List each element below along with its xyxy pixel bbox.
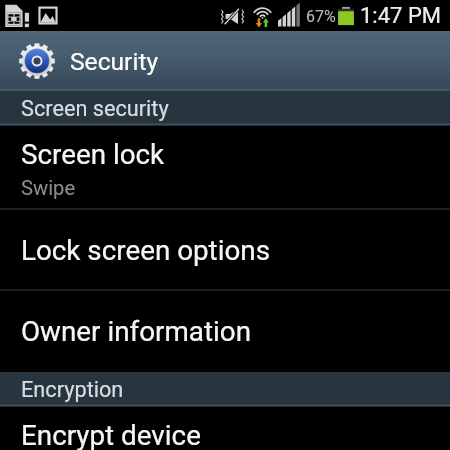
- staticText: 1:47 PM: [360, 3, 441, 29]
- button[interactable]: Encrypt device: [0, 407, 450, 450]
- staticText: Lock screen options: [21, 234, 271, 267]
- staticText: Security: [70, 47, 159, 76]
- staticText: 67%: [306, 7, 336, 26]
- staticText: Encryption: [21, 377, 124, 402]
- button[interactable]: Lock screen options: [0, 210, 450, 289]
- staticText: Screen security: [21, 96, 169, 121]
- staticText: Encrypt device: [21, 419, 201, 450]
- button[interactable]: Screen lock: [0, 126, 450, 208]
- staticText: Screen lock: [21, 138, 165, 171]
- other: Settings: [19, 43, 55, 79]
- staticText: Owner information: [21, 315, 252, 348]
- button[interactable]: Owner information: [0, 291, 450, 372]
- staticText: Swipe: [21, 176, 76, 200]
